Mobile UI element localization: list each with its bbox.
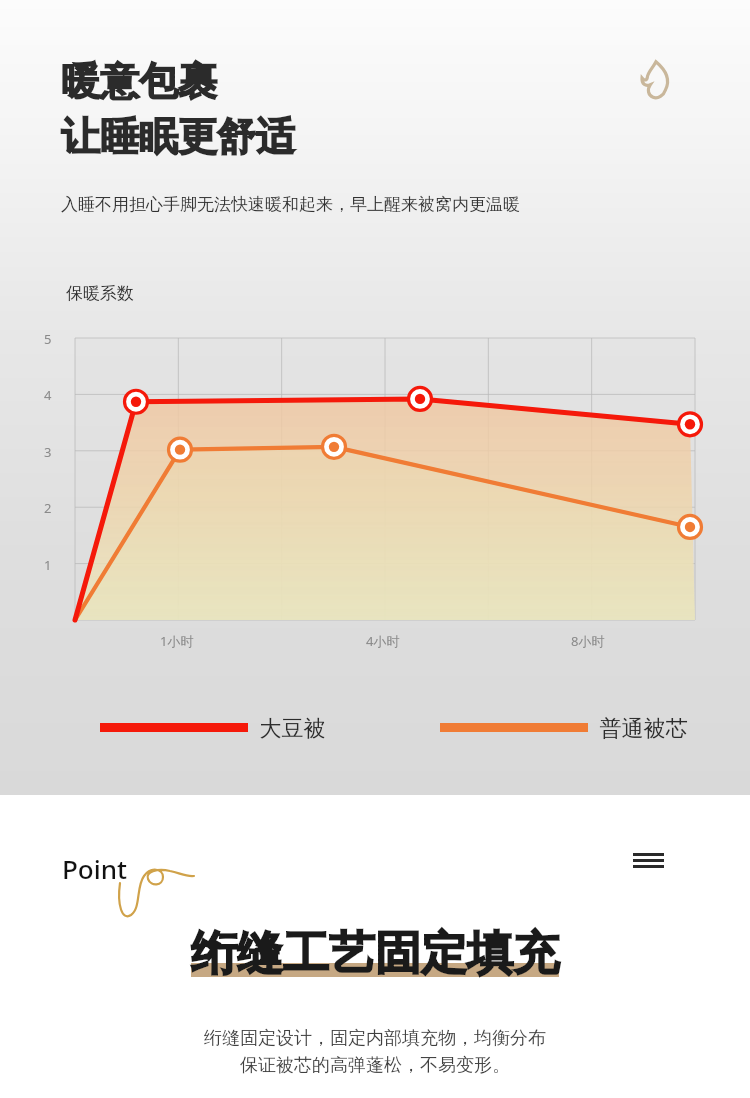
staticText: 大豆被 <box>248 712 326 742</box>
staticText: Point <box>62 851 128 886</box>
staticText: 8小时 <box>571 632 605 650</box>
staticText: 4 <box>44 386 52 404</box>
button[interactable]: Menu <box>633 853 664 868</box>
staticText: 1小时 <box>160 632 194 650</box>
staticText: 让睡眠更舒适 <box>61 112 295 161</box>
staticText: 保暖系数 <box>66 283 134 304</box>
staticText: 绗缝工艺固定填充 <box>191 925 559 983</box>
staticText: 3 <box>44 443 52 461</box>
button[interactable]: Warmth <box>631 57 679 105</box>
staticText: 4小时 <box>366 632 400 650</box>
staticText: 绗缝固定设计，固定内部填充物，均衡分布 保证被芯的高弹蓬松，不易变形。 <box>0 1027 750 1077</box>
button[interactable]: Point <box>58 845 188 907</box>
staticText: 普通被芯 <box>588 712 688 742</box>
staticText: 暖意包裹 <box>61 57 217 106</box>
staticText: 2 <box>44 499 52 517</box>
button[interactable]: 普通被芯 <box>440 712 688 742</box>
staticText: 1 <box>44 556 52 574</box>
staticText: 5 <box>44 330 52 348</box>
staticText: 入睡不用担心手脚无法快速暖和起来，早上醒来被窝内更温暖 <box>61 194 520 215</box>
button[interactable]: 大豆被 <box>100 712 326 742</box>
